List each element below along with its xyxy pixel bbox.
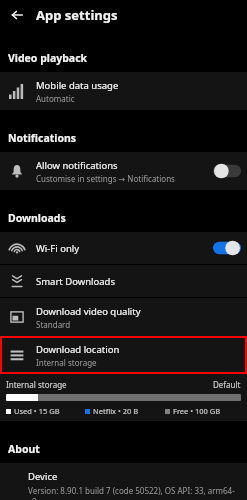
button[interactable]: Back — [6, 4, 28, 26]
staticText: Smart Downloads — [36, 275, 116, 288]
staticText: Download location — [36, 343, 120, 356]
staticText: Video playback — [8, 51, 88, 65]
staticText: Used • 15 GB — [14, 406, 60, 416]
button[interactable]: Mobile data usage — [0, 72, 247, 110]
staticText: Internal storage — [36, 357, 97, 368]
staticText: Internal storage — [6, 379, 67, 390]
staticText: Netflix • 20 B — [93, 406, 139, 416]
staticText: Standard — [36, 319, 71, 330]
button[interactable]: On — [213, 240, 241, 256]
staticText: Mobile data usage — [36, 79, 119, 92]
button[interactable]: Smart Downloads — [0, 265, 247, 297]
staticText: Device — [28, 470, 58, 483]
staticText: Wi-Fi only — [36, 242, 80, 255]
staticText: Downloads — [8, 211, 66, 225]
staticText: Download video quality — [36, 305, 141, 318]
button[interactable]: Download video quality — [0, 298, 247, 336]
staticText: Default — [213, 379, 241, 390]
staticText: About — [8, 442, 40, 456]
button[interactable]: Device — [0, 463, 247, 500]
button[interactable]: Wi-Fi only — [0, 232, 247, 264]
button[interactable]: Download location — [0, 336, 247, 374]
staticText: Version: 8.90.1 build 7 (code 50522), OS… — [28, 485, 239, 500]
staticText: Allow notifications — [36, 159, 118, 172]
button[interactable]: Off — [213, 163, 241, 179]
staticText: App settings — [36, 6, 118, 24]
staticText: Customise in settings → Notifications — [36, 173, 175, 184]
staticText: Free • 100 GB — [173, 406, 221, 416]
staticText: Notifications — [8, 131, 77, 145]
button[interactable]: Allow notifications — [0, 152, 247, 190]
staticText: Automatic — [36, 93, 75, 104]
